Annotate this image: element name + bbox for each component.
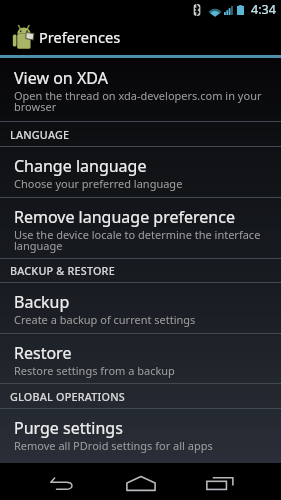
button[interactable]: Recent apps <box>197 468 243 498</box>
staticText: Remove language preference <box>14 206 235 228</box>
button[interactable]: View on XDA <box>0 58 281 121</box>
staticText: Create a backup of current settings <box>14 312 196 327</box>
button[interactable]: Back <box>40 468 86 498</box>
staticText: BACKUP & RESTORE <box>10 263 115 278</box>
staticText: Backup <box>14 291 70 313</box>
staticText: Open the thread on xda-developers.com in… <box>14 88 268 114</box>
button[interactable]: Restore <box>0 334 281 383</box>
staticText: Change language <box>14 155 147 177</box>
button[interactable]: Home <box>118 468 164 498</box>
staticText: Restore settings from a backup <box>14 363 175 378</box>
button[interactable]: Preferences <box>0 19 281 55</box>
staticText: Use the device locale to determine the i… <box>14 227 268 253</box>
staticText: View on XDA <box>14 67 108 89</box>
staticText: GLOBAL OPERATIONS <box>10 389 125 404</box>
button[interactable]: Purge settings <box>0 409 281 461</box>
staticText: Choose your preferred language <box>14 176 183 191</box>
staticText: Remove all PDroid settings for all apps <box>14 438 213 453</box>
button[interactable]: Change language <box>0 147 281 197</box>
staticText: 4:34 <box>251 1 276 18</box>
staticText: Purge settings <box>14 417 123 439</box>
staticText: Preferences <box>39 27 121 47</box>
staticText: LANGUAGE <box>10 127 70 142</box>
staticText: Restore <box>14 342 72 364</box>
button[interactable]: Remove language preference <box>0 198 281 258</box>
button[interactable]: Backup <box>0 283 281 333</box>
